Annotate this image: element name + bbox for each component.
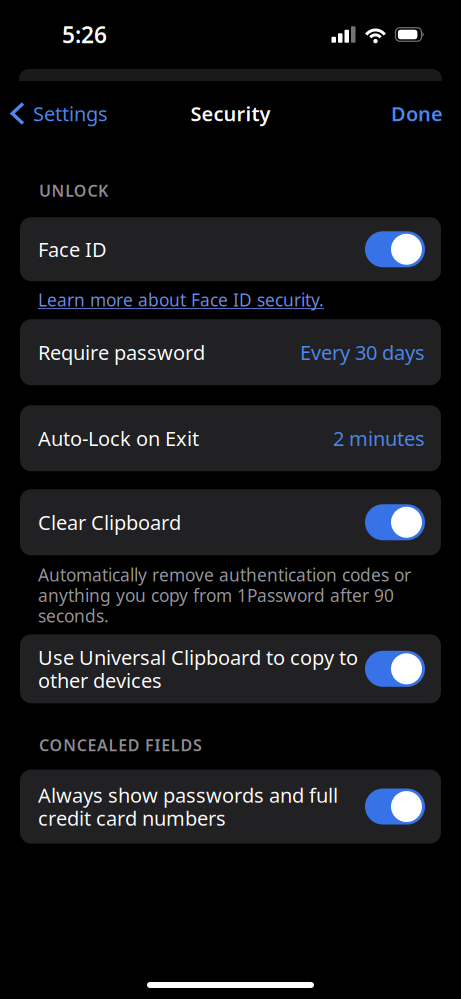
button[interactable]: Face ID — [20, 217, 441, 281]
button[interactable]: Settings — [10, 100, 108, 127]
staticText: anything you copy from 1Password after 9… — [38, 584, 394, 607]
button[interactable]: Use Universal Clipboard to copy to — [20, 634, 441, 703]
staticText: credit card numbers — [38, 805, 226, 831]
staticText: Learn more about Face ID security. — [38, 288, 324, 311]
staticText: Every 30 days — [300, 339, 425, 366]
staticText: 5:26 — [62, 19, 107, 49]
button[interactable]: Done — [391, 100, 443, 127]
staticText: UNLOCK — [39, 180, 108, 201]
button[interactable]: Learn more about Face ID security. — [20, 288, 324, 311]
staticText: Settings — [33, 100, 108, 127]
staticText: seconds. — [38, 604, 109, 627]
staticText: Auto-Lock on Exit — [38, 425, 199, 452]
staticText: Done — [391, 100, 443, 127]
staticText: CONCEALED FIELDS — [39, 734, 202, 755]
staticText: Automatically remove authentication code… — [38, 563, 411, 586]
staticText: Security — [190, 100, 270, 127]
staticText: Use Universal Clipboard to copy to — [38, 644, 358, 671]
button[interactable]: Always show passwords and full — [20, 770, 441, 844]
staticText: Clear Clipboard — [38, 509, 181, 536]
button[interactable]: Clear Clipboard — [20, 489, 441, 555]
staticText: Always show passwords and full — [38, 782, 338, 808]
button[interactable]: Auto-Lock on Exit — [20, 405, 441, 471]
staticText: 2 minutes — [333, 425, 425, 452]
staticText: Require password — [38, 339, 205, 366]
staticText: Face ID — [38, 236, 107, 263]
staticText: other devices — [38, 667, 162, 694]
button[interactable]: Require password — [20, 319, 441, 385]
